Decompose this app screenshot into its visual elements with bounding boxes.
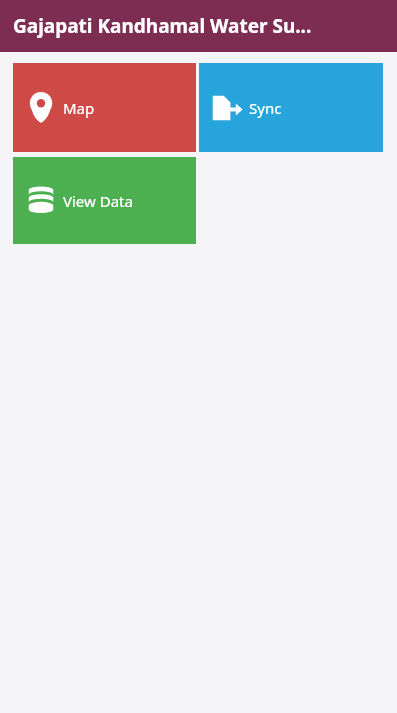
button[interactable]: Sync xyxy=(199,63,383,152)
button[interactable]: Map xyxy=(13,63,196,152)
staticText: Gajapati Kandhamal Water Su... xyxy=(13,13,312,39)
button[interactable]: View Data xyxy=(13,157,196,244)
staticText: View Data xyxy=(63,191,133,211)
staticText: Map xyxy=(63,98,95,118)
staticText: Sync xyxy=(249,98,282,118)
